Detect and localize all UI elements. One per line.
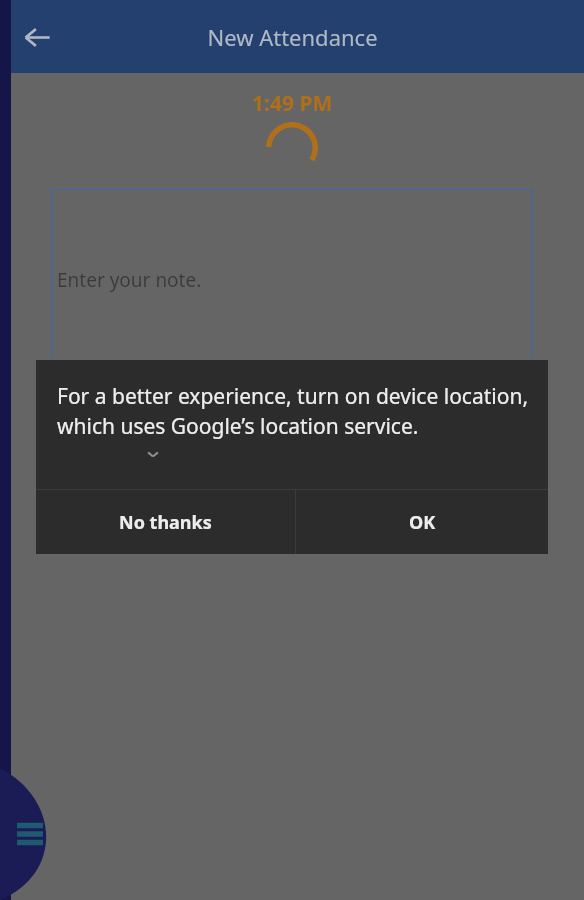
button[interactable]: OK [296, 490, 548, 554]
staticText: New Attendance [207, 22, 378, 52]
staticText: For a better experience, turn on device … [57, 382, 532, 440]
button[interactable]: Enter your note. [52, 189, 532, 365]
button[interactable]: Back [12, 12, 62, 62]
button[interactable]: Open navigation menu [0, 768, 60, 900]
staticText: OK [409, 510, 436, 535]
staticText: Enter your note. [57, 267, 202, 293]
staticText: No thanks [119, 510, 212, 535]
staticText: 1:49 PM [252, 89, 333, 118]
button[interactable]: No thanks [36, 490, 295, 554]
